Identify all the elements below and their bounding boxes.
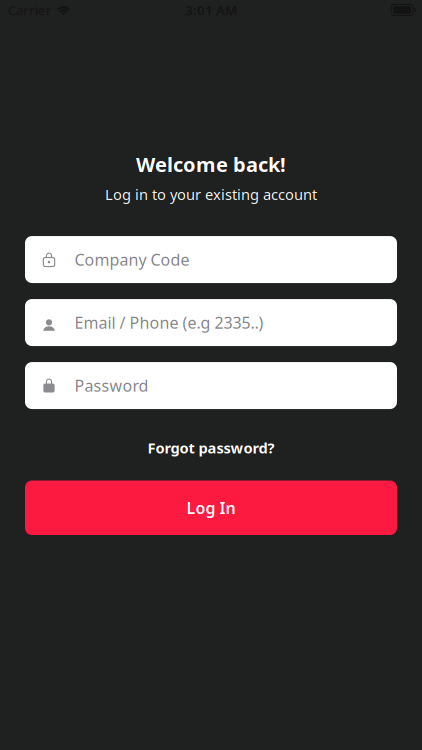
staticText: Forgot password?	[147, 438, 274, 457]
staticText: Log in to your existing account	[105, 185, 317, 204]
button[interactable]: Email / Phone (e.g 2335..)	[25, 299, 397, 346]
button[interactable]: Log In	[25, 480, 397, 535]
staticText: Carrier	[8, 1, 52, 19]
staticText: Password	[74, 375, 148, 396]
button[interactable]: Company Code	[25, 236, 397, 283]
staticText: Welcome back!	[136, 151, 286, 178]
staticText: 3:01 AM	[185, 1, 237, 19]
staticText: Log In	[186, 497, 235, 518]
button[interactable]: Forgot password?	[135, 434, 286, 461]
button[interactable]: Password	[25, 362, 397, 409]
staticText: Email / Phone (e.g 2335..)	[74, 312, 263, 333]
staticText: Company Code	[74, 249, 189, 270]
